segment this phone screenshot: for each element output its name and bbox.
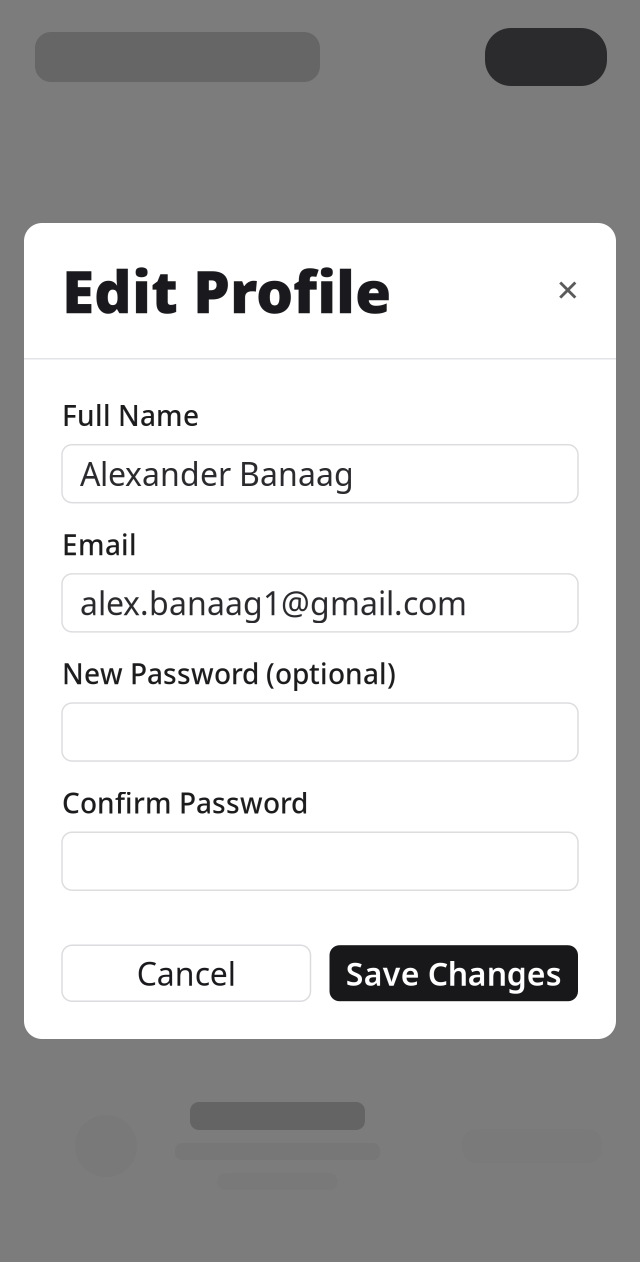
staticText: alex.banaag1@gmail.com <box>80 582 467 624</box>
staticText: Alexander Banaag <box>80 452 354 495</box>
staticText: Email <box>62 526 137 563</box>
button[interactable]: Cancel <box>62 945 310 1001</box>
staticText: Save Changes <box>346 952 562 994</box>
staticText: Cancel <box>137 952 236 994</box>
button[interactable]: Close <box>546 268 590 312</box>
staticText: New Password (optional) <box>62 655 396 692</box>
button[interactable]: Save Changes <box>329 945 578 1001</box>
staticText: Confirm Password <box>62 784 308 821</box>
staticText: ✕ <box>555 274 580 307</box>
staticText: Full Name <box>62 396 199 434</box>
staticText: Edit Profile <box>62 251 391 329</box>
